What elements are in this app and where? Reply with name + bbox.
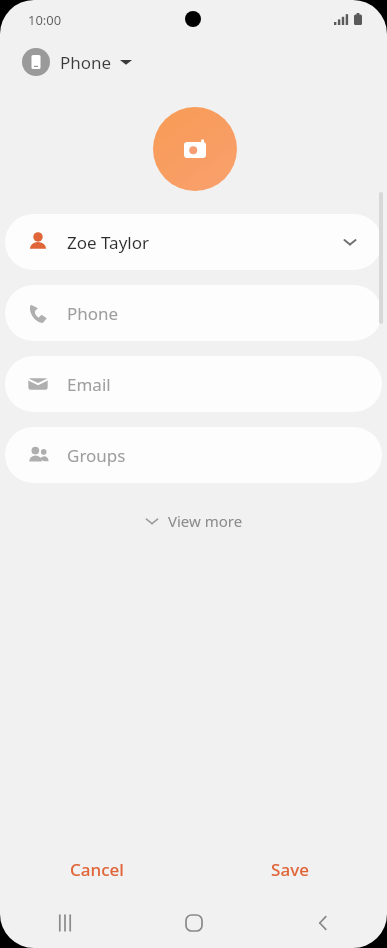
button[interactable]: Groups	[5, 427, 382, 483]
button[interactable]: Zoe Taylor	[5, 214, 382, 270]
staticText: Groups	[67, 444, 126, 467]
button[interactable]: Phone	[5, 285, 382, 341]
staticText: Cancel	[70, 858, 124, 881]
staticText: View more	[168, 511, 243, 531]
button[interactable]: Cancel	[0, 848, 193, 890]
button[interactable]: View more	[130, 504, 257, 538]
staticText: Zoe Taylor	[67, 231, 150, 254]
button[interactable]: Email	[5, 356, 382, 412]
button[interactable]: Save	[193, 848, 387, 890]
button[interactable]: Recents	[0, 898, 129, 948]
staticText: 10:00	[28, 11, 62, 29]
button[interactable]: Phone	[18, 44, 136, 80]
staticText: Email	[67, 373, 111, 396]
button[interactable]: Home	[129, 898, 258, 948]
button[interactable]: Back	[258, 898, 387, 948]
button[interactable]: Add contact photo	[153, 107, 237, 191]
staticText: Phone	[60, 51, 112, 74]
staticText: Phone	[67, 302, 119, 325]
staticText: Save	[271, 858, 309, 881]
